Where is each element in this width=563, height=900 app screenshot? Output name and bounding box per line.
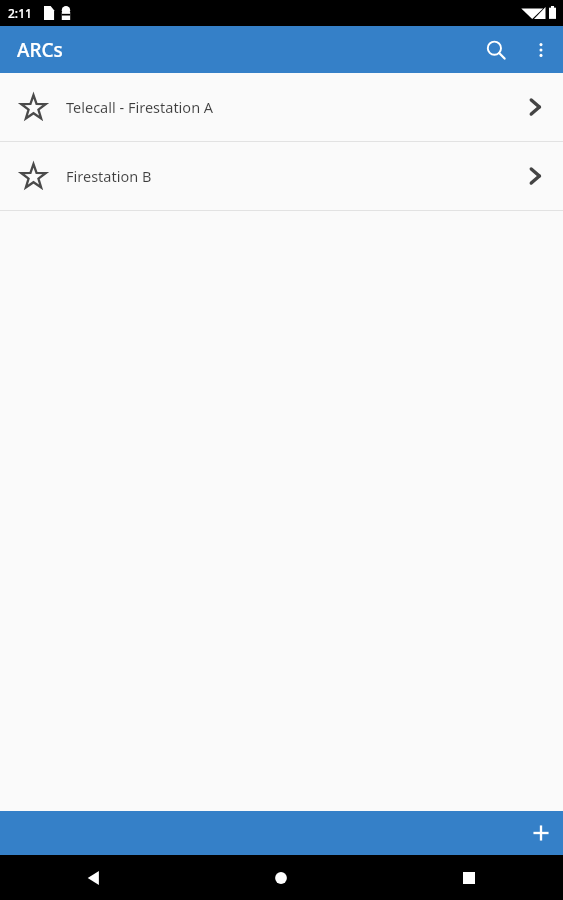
button[interactable]: More options (519, 28, 563, 72)
staticText: 2:11 (8, 5, 32, 21)
button[interactable]: Firestation B (0, 142, 563, 210)
button[interactable]: Home (261, 858, 301, 898)
staticText: Firestation B (66, 166, 507, 186)
staticText: Telecall - Firestation A (66, 97, 507, 117)
button[interactable]: Search (473, 27, 519, 73)
button[interactable]: Telecall - Firestation A (0, 73, 563, 141)
staticText: ARCs (17, 37, 63, 63)
button[interactable]: Recents (449, 858, 489, 898)
button[interactable]: Back (74, 858, 114, 898)
button[interactable]: Add (519, 811, 563, 855)
